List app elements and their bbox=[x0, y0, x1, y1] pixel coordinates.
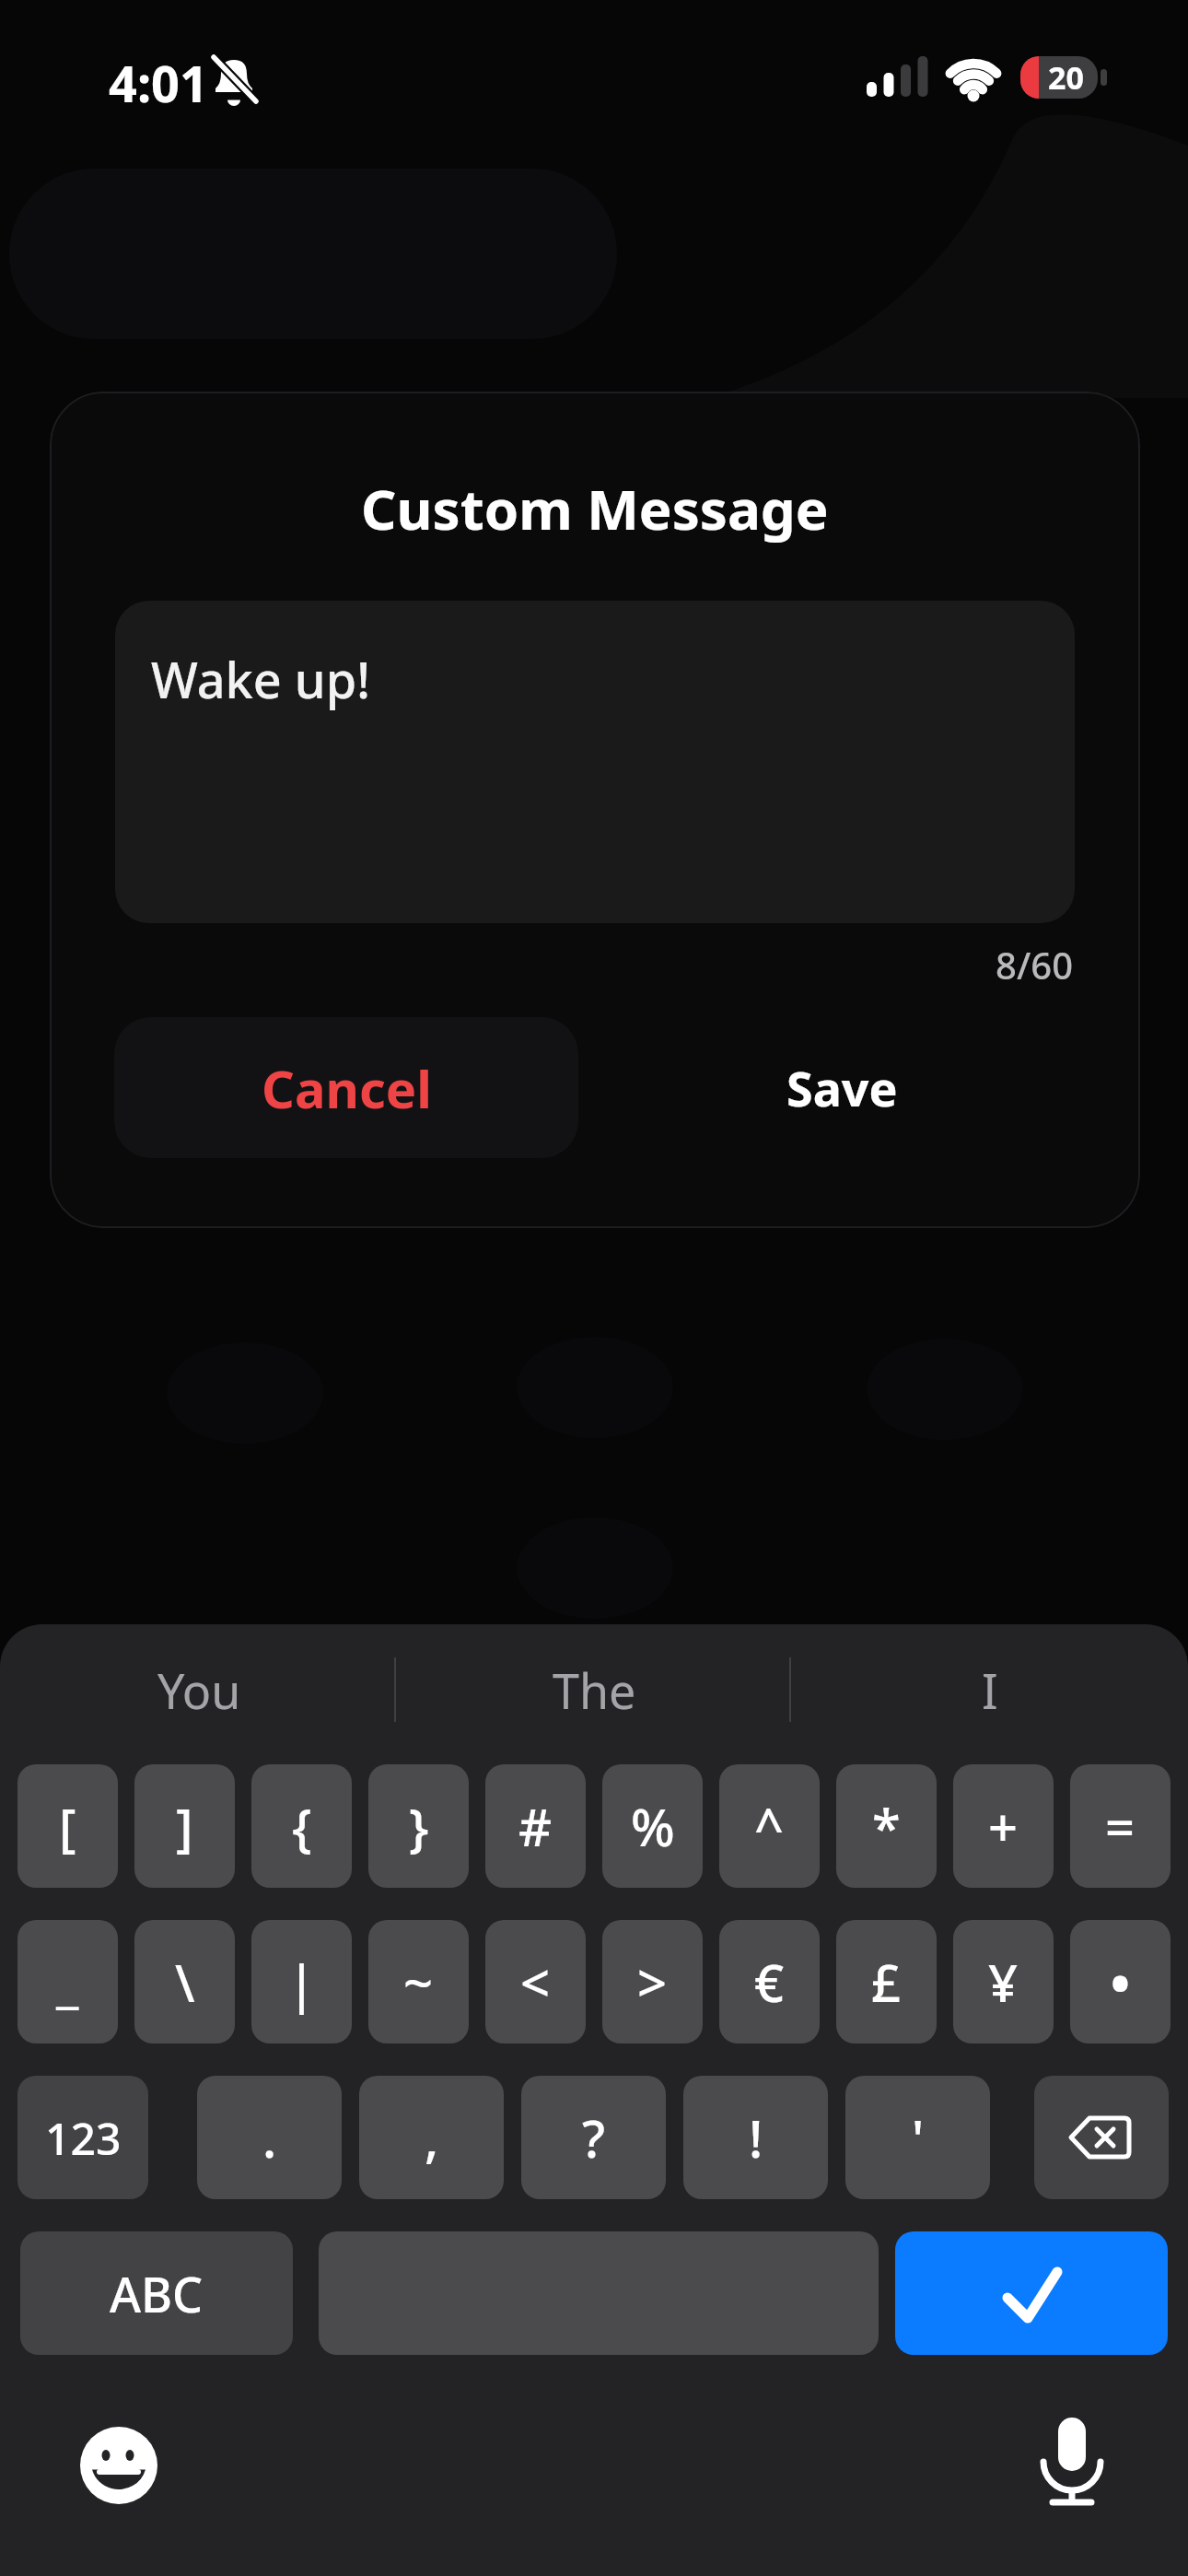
staticText: ] bbox=[176, 1791, 193, 1861]
button[interactable]: ¥ bbox=[953, 1920, 1054, 2043]
button[interactable]: Save bbox=[610, 1017, 1074, 1158]
staticText: \ bbox=[175, 1947, 195, 2017]
staticText: , bbox=[425, 2102, 439, 2172]
staticText: 123 bbox=[45, 2108, 122, 2168]
staticText: ^ bbox=[754, 1791, 785, 1861]
button[interactable]: ] bbox=[134, 1764, 235, 1888]
button[interactable]: [ bbox=[17, 1764, 118, 1888]
button[interactable]: | bbox=[251, 1920, 352, 2043]
staticText: ¥ bbox=[988, 1947, 1019, 2017]
button[interactable]: Wake up! bbox=[115, 601, 1075, 923]
staticText: ? bbox=[582, 2102, 606, 2172]
staticText: Wake up! bbox=[151, 645, 370, 713]
button[interactable]: ABC bbox=[20, 2231, 293, 2355]
staticText: } bbox=[409, 1791, 429, 1861]
staticText: # bbox=[518, 1791, 553, 1861]
button[interactable]: You bbox=[88, 1656, 309, 1724]
button[interactable]: Cancel bbox=[114, 1017, 578, 1158]
button[interactable]: I bbox=[879, 1656, 1101, 1724]
staticText: [ bbox=[59, 1791, 76, 1861]
button[interactable] bbox=[1035, 2412, 1109, 2510]
staticText: 20 bbox=[1048, 56, 1084, 99]
staticText: = bbox=[1105, 1791, 1136, 1861]
button[interactable]: = bbox=[1070, 1764, 1171, 1888]
button[interactable]: ! bbox=[683, 2076, 828, 2199]
button[interactable] bbox=[79, 2426, 158, 2505]
button[interactable]: % bbox=[602, 1764, 703, 1888]
button[interactable]: £ bbox=[836, 1920, 937, 2043]
button[interactable]: ~ bbox=[368, 1920, 469, 2043]
button[interactable]: # bbox=[485, 1764, 586, 1888]
staticText: ABC bbox=[110, 2261, 204, 2326]
staticText: * bbox=[872, 1791, 901, 1861]
staticText: I bbox=[982, 1657, 998, 1723]
button[interactable]: * bbox=[836, 1764, 937, 1888]
staticText: ' bbox=[912, 2102, 925, 2172]
staticText: € bbox=[754, 1947, 785, 2017]
staticText: • bbox=[1109, 1940, 1132, 2023]
staticText: | bbox=[287, 1947, 316, 2017]
button[interactable] bbox=[319, 2231, 879, 2355]
staticText: The bbox=[553, 1657, 636, 1723]
staticText: ~ bbox=[403, 1947, 434, 2017]
staticText: + bbox=[988, 1791, 1019, 1861]
button[interactable]: _ bbox=[17, 1920, 118, 2043]
staticText: < bbox=[520, 1947, 551, 2017]
button[interactable]: ? bbox=[521, 2076, 666, 2199]
button[interactable]: 123 bbox=[17, 2076, 148, 2199]
staticText: £ bbox=[871, 1947, 902, 2017]
button[interactable]: . bbox=[197, 2076, 342, 2199]
button[interactable]: } bbox=[368, 1764, 469, 1888]
button[interactable]: The bbox=[483, 1656, 705, 1724]
staticText: > bbox=[637, 1947, 668, 2017]
button[interactable]: ^ bbox=[719, 1764, 820, 1888]
staticText: { bbox=[292, 1791, 312, 1861]
staticText: Cancel bbox=[262, 1053, 432, 1123]
staticText: Custom Message bbox=[361, 471, 829, 546]
staticText: ! bbox=[749, 2102, 763, 2172]
staticText: Save bbox=[786, 1055, 898, 1120]
staticText: 8/60 bbox=[996, 940, 1074, 989]
button[interactable]: \ bbox=[134, 1920, 235, 2043]
staticText: % bbox=[631, 1791, 675, 1861]
staticText: _ bbox=[56, 1947, 79, 2017]
button[interactable]: ' bbox=[845, 2076, 990, 2199]
staticText: You bbox=[157, 1657, 241, 1723]
staticText: . bbox=[262, 2102, 277, 2172]
button[interactable]: { bbox=[251, 1764, 352, 1888]
button[interactable]: € bbox=[719, 1920, 820, 2043]
button[interactable]: > bbox=[602, 1920, 703, 2043]
button[interactable]: • bbox=[1070, 1920, 1171, 2043]
staticText: 4:01 bbox=[109, 49, 208, 117]
button[interactable]: + bbox=[953, 1764, 1054, 1888]
button[interactable] bbox=[1034, 2076, 1169, 2199]
button[interactable]: , bbox=[359, 2076, 504, 2199]
button[interactable]: < bbox=[485, 1920, 586, 2043]
button[interactable] bbox=[895, 2231, 1168, 2355]
